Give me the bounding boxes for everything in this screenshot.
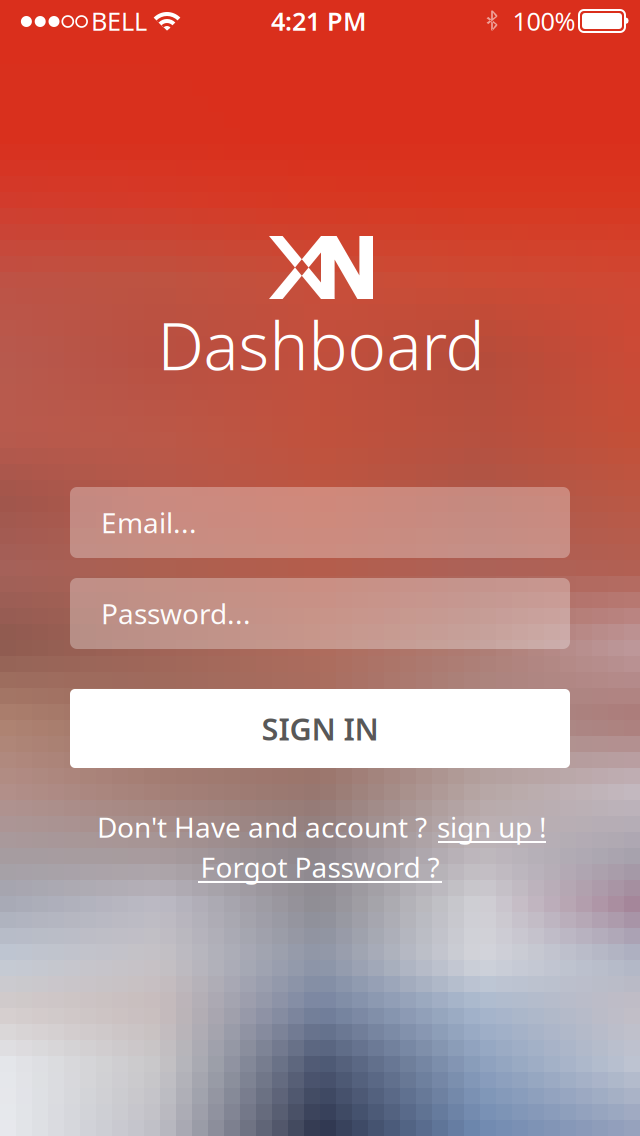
- staticText: SIGN IN: [261, 708, 378, 749]
- button[interactable]: Email...: [70, 487, 570, 558]
- staticText: Email...: [101, 504, 197, 541]
- staticText: Password...: [101, 595, 251, 632]
- button[interactable]: Forgot Password ?: [198, 853, 442, 883]
- staticText: Forgot Password ?: [200, 848, 439, 886]
- button[interactable]: SIGN IN: [70, 689, 570, 768]
- staticText: BELL: [91, 4, 147, 38]
- button[interactable]: sign up !: [438, 813, 546, 843]
- staticText: Dashboard: [157, 302, 484, 388]
- button[interactable]: Password...: [70, 578, 570, 649]
- staticText: Don't Have and account ?: [97, 808, 427, 846]
- staticText: sign up !: [437, 808, 547, 846]
- staticText: 100%: [512, 4, 575, 38]
- staticText: 4:21 PM: [271, 4, 367, 38]
